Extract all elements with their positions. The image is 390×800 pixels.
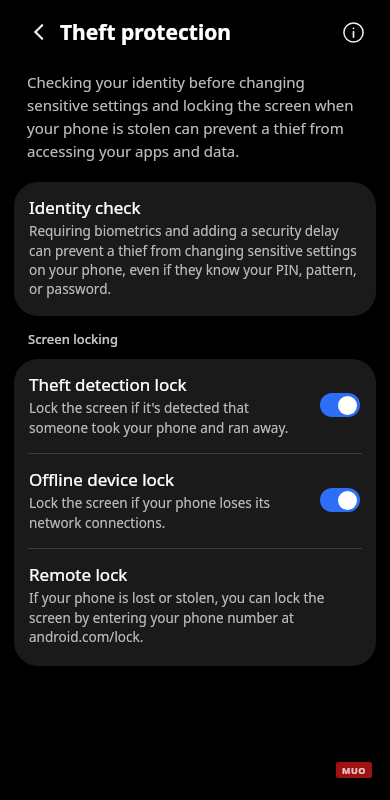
button[interactable]: Offline device lock <box>14 454 376 548</box>
staticText: Theft protection <box>60 18 232 47</box>
staticText: MUO <box>342 764 366 776</box>
staticText: Screen locking <box>28 330 119 348</box>
button[interactable]: Remote lock <box>14 549 376 666</box>
staticText: Lock the screen if your phone loses its … <box>29 494 310 532</box>
button[interactable]: Back <box>22 15 56 49</box>
staticText: Offline device lock <box>29 468 175 491</box>
button[interactable]: Information <box>336 15 370 49</box>
button[interactable]: Offline device lock toggle, on <box>320 488 360 512</box>
staticText: Remote lock <box>29 563 128 586</box>
staticText: Checking your identity before changing s… <box>27 72 366 161</box>
button[interactable]: Theft detection lock toggle, on <box>320 393 360 417</box>
staticText: Theft detection lock <box>29 373 187 396</box>
button[interactable]: Theft detection lock <box>14 359 376 453</box>
staticText: If your phone is lost or stolen, you can… <box>29 589 358 646</box>
button[interactable]: Identity check <box>14 182 376 316</box>
staticText: Lock the screen if it's detected that so… <box>29 399 310 437</box>
staticText: Identity check <box>29 196 141 219</box>
staticText: Requiring biometrics and adding a securi… <box>29 222 358 298</box>
